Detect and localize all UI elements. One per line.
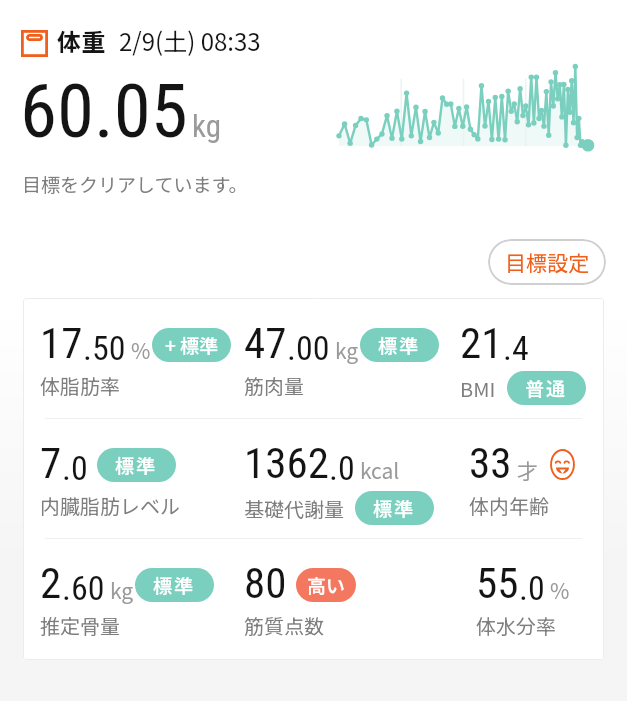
button[interactable]: 21 bbox=[460, 318, 586, 405]
staticText: 目標設定 bbox=[505, 247, 589, 277]
staticText: .4 bbox=[503, 328, 529, 368]
staticText: .60 bbox=[62, 568, 105, 608]
staticText: 1362 bbox=[244, 438, 329, 488]
staticText: kg bbox=[192, 108, 221, 144]
staticText: 47 bbox=[244, 318, 287, 368]
staticText: 標準 bbox=[373, 494, 416, 522]
button[interactable]: 高い bbox=[296, 568, 356, 602]
staticText: 基礎代謝量 bbox=[244, 494, 344, 523]
staticText: .0 bbox=[62, 448, 88, 488]
button[interactable]: 普通 bbox=[507, 371, 586, 405]
button[interactable]: 47 bbox=[244, 318, 444, 400]
staticText: 推定骨量 bbox=[40, 611, 120, 640]
staticText: 2 bbox=[40, 558, 62, 608]
staticText: kg bbox=[110, 575, 134, 605]
other: Weight bbox=[21, 30, 48, 57]
button[interactable]: 標準 bbox=[97, 448, 176, 482]
staticText: 60.05 bbox=[20, 67, 188, 155]
staticText: 17 bbox=[40, 318, 83, 368]
staticText: .0 bbox=[519, 568, 545, 608]
staticText: .50 bbox=[83, 328, 126, 368]
staticText: .00 bbox=[287, 328, 330, 368]
staticText: 80 bbox=[244, 558, 287, 608]
staticText: % bbox=[550, 575, 570, 605]
button[interactable]: 目標設定 bbox=[488, 239, 606, 285]
staticText: 目標をクリアしています。 bbox=[22, 170, 248, 198]
staticText: + 標準 bbox=[165, 331, 219, 359]
button[interactable]: 2 bbox=[40, 558, 244, 640]
staticText: 筋質点数 bbox=[244, 611, 324, 640]
staticText: BMI bbox=[460, 374, 496, 403]
staticText: 筋肉量 bbox=[244, 371, 304, 400]
staticText: 才 bbox=[517, 455, 538, 485]
button[interactable]: 標準 bbox=[135, 568, 214, 602]
staticText: 7 bbox=[40, 438, 62, 488]
staticText: 33 bbox=[469, 438, 512, 488]
button[interactable]: 80 bbox=[244, 558, 444, 640]
button[interactable]: + 標準 bbox=[152, 328, 231, 362]
staticText: .0 bbox=[329, 448, 355, 488]
staticText: 標準 bbox=[153, 571, 196, 599]
button[interactable]: 1362 bbox=[244, 438, 444, 525]
button[interactable]: 標準 bbox=[360, 328, 439, 362]
button[interactable]: 17 bbox=[40, 318, 244, 400]
staticText: 21 bbox=[460, 318, 503, 368]
staticText: 体水分率 bbox=[476, 611, 556, 640]
staticText: 体脂肪率 bbox=[40, 371, 120, 400]
staticText: 標準 bbox=[115, 451, 158, 479]
staticText: 体内年齢 bbox=[469, 491, 549, 520]
staticText: kg bbox=[335, 335, 359, 365]
other: Body age rating bbox=[547, 449, 578, 480]
staticText: 標準 bbox=[378, 331, 421, 359]
staticText: 2/9(土) 08:33 bbox=[119, 23, 261, 58]
staticText: 内臓脂肪レベル bbox=[40, 491, 180, 520]
button[interactable]: 7 bbox=[40, 438, 244, 520]
staticText: 55 bbox=[476, 558, 519, 608]
staticText: % bbox=[131, 335, 151, 365]
staticText: kcal bbox=[360, 455, 400, 485]
button[interactable]: 33 bbox=[469, 438, 578, 520]
staticText: 高い bbox=[307, 571, 346, 599]
button[interactable]: 標準 bbox=[355, 491, 434, 525]
staticText: 普通 bbox=[525, 374, 568, 402]
button[interactable]: 55 bbox=[476, 558, 570, 640]
staticText: 体重 bbox=[57, 23, 105, 58]
